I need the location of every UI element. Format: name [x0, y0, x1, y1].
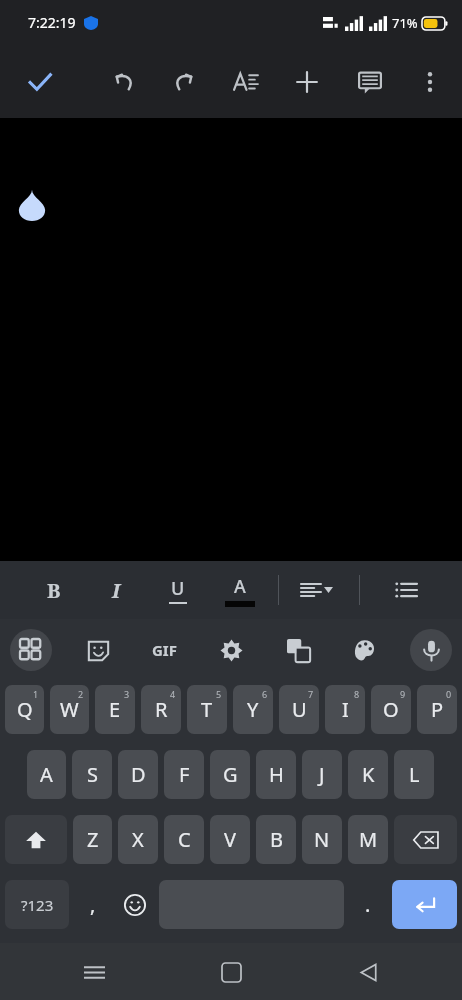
button[interactable]: S [72, 750, 112, 799]
staticText: H [269, 761, 284, 788]
staticText: F [179, 761, 190, 788]
staticText: K [362, 761, 375, 788]
staticText: V [224, 826, 236, 853]
staticText: O [383, 696, 399, 723]
button[interactable]: Keyboard switcher [10, 629, 52, 671]
button[interactable]: X [118, 815, 158, 864]
staticText: X [132, 826, 144, 853]
button[interactable]: Translate [277, 629, 319, 671]
button[interactable]: J [302, 750, 342, 799]
button[interactable]: Bold [30, 566, 78, 614]
button[interactable]: Stickers [77, 629, 119, 671]
staticText: 2 [78, 688, 84, 700]
staticText: L [409, 761, 420, 788]
staticText: A [234, 574, 246, 599]
staticText: U [292, 696, 307, 723]
staticText: E [109, 696, 121, 723]
staticText: T [201, 696, 213, 723]
button[interactable]: Themes [343, 629, 385, 671]
button[interactable]: R [141, 685, 181, 734]
staticText: D [131, 761, 146, 788]
button[interactable]: Redo [161, 58, 209, 106]
staticText: B [270, 826, 283, 853]
staticText: U [171, 576, 185, 601]
button[interactable]: O [371, 685, 411, 734]
button[interactable]: N [302, 815, 342, 864]
button[interactable]: B [256, 815, 296, 864]
staticText: N [314, 826, 330, 853]
button[interactable]: Italic [92, 566, 140, 614]
button[interactable]: Bulleted list [382, 566, 430, 614]
staticText: A [40, 761, 53, 788]
button[interactable]: GIF [143, 629, 185, 671]
staticText: M [359, 826, 378, 853]
button[interactable]: Shift [5, 815, 67, 864]
button[interactable]: Back [344, 948, 392, 996]
staticText: 8 [354, 688, 360, 700]
staticText: 4 [170, 688, 176, 700]
button[interactable]: C [164, 815, 204, 864]
button[interactable]: H [256, 750, 296, 799]
button[interactable]: I [325, 685, 365, 734]
staticText: GIF [152, 640, 177, 660]
button[interactable]: L [394, 750, 434, 799]
button[interactable]: Undo [99, 58, 147, 106]
staticText: Z [87, 826, 99, 853]
button[interactable]: Underline [154, 566, 202, 614]
button[interactable]: W [50, 685, 89, 734]
button[interactable]: Emoji [117, 880, 153, 929]
staticText: Y [247, 696, 259, 723]
button[interactable]: Symbols [5, 880, 69, 929]
button[interactable]: Y [233, 685, 273, 734]
staticText: I [112, 577, 121, 604]
staticText: 7 [308, 688, 314, 700]
button[interactable]: More options [406, 58, 454, 106]
button[interactable]: Period [350, 880, 386, 929]
button[interactable]: D [118, 750, 158, 799]
staticText: J [319, 761, 325, 788]
staticText: P [431, 696, 444, 723]
staticText: I [342, 696, 349, 723]
staticText: Q [17, 696, 33, 723]
staticText: 71% [392, 14, 418, 32]
staticText: 1 [33, 688, 39, 700]
button[interactable]: A [27, 750, 66, 799]
staticText: S [87, 761, 98, 788]
button[interactable]: Text color [216, 566, 264, 614]
button[interactable]: Recent apps [70, 948, 118, 996]
button[interactable]: P [417, 685, 457, 734]
button[interactable]: Text formatting [222, 58, 270, 106]
staticText: 3 [124, 688, 130, 700]
staticText: R [155, 696, 168, 723]
staticText: , [90, 891, 96, 918]
button[interactable]: Voice input [410, 629, 452, 671]
button[interactable]: Comma [75, 880, 111, 929]
staticText: W [60, 696, 79, 723]
button[interactable]: Backspace [394, 815, 457, 864]
button[interactable]: Comments [346, 58, 394, 106]
button[interactable]: Z [73, 815, 112, 864]
button[interactable]: M [348, 815, 388, 864]
staticText: ?123 [21, 895, 54, 915]
button[interactable]: G [210, 750, 250, 799]
button[interactable]: Done [16, 58, 64, 106]
button[interactable]: Insert [283, 58, 331, 106]
button[interactable]: Enter [392, 880, 457, 929]
button[interactable]: K [348, 750, 388, 799]
staticText: 9 [400, 688, 406, 700]
button[interactable]: F [164, 750, 204, 799]
button[interactable]: Alignment [293, 566, 341, 614]
staticText: 7:22:19 [28, 13, 76, 32]
button[interactable]: Home [207, 948, 255, 996]
button[interactable]: E [95, 685, 135, 734]
button[interactable]: T [187, 685, 227, 734]
staticText: 0 [446, 688, 452, 700]
button[interactable]: Q [5, 685, 44, 734]
button[interactable]: V [210, 815, 250, 864]
staticText: B [47, 577, 61, 604]
button[interactable]: Settings [210, 629, 252, 671]
staticText: 6 [262, 688, 268, 700]
staticText: . [365, 891, 371, 918]
button[interactable]: U [279, 685, 319, 734]
